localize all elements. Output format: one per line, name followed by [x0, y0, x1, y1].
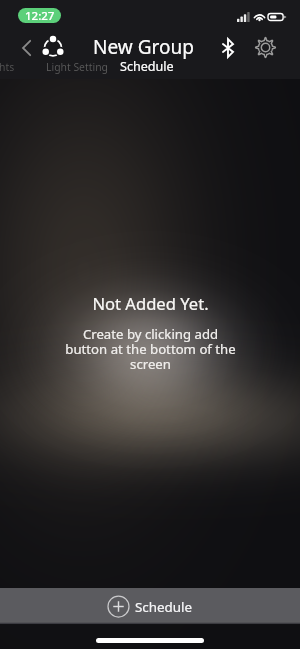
staticText: Schedule: [135, 598, 193, 616]
button[interactable]: Group: [38, 32, 68, 62]
staticText: Not Added Yet.: [92, 292, 209, 315]
button[interactable]: Schedule: [120, 58, 174, 75]
button[interactable]: hts: [0, 60, 15, 74]
staticText: New Group: [93, 34, 194, 60]
button[interactable]: Schedule: [0, 588, 300, 624]
button[interactable]: Light Setting: [46, 60, 108, 74]
staticText: 12:27: [25, 8, 55, 23]
button[interactable]: Bluetooth: [213, 33, 243, 63]
button[interactable]: Settings: [250, 32, 280, 62]
staticText: Create by clicking add button at the bot…: [63, 325, 238, 373]
button[interactable]: Back: [11, 33, 41, 62]
